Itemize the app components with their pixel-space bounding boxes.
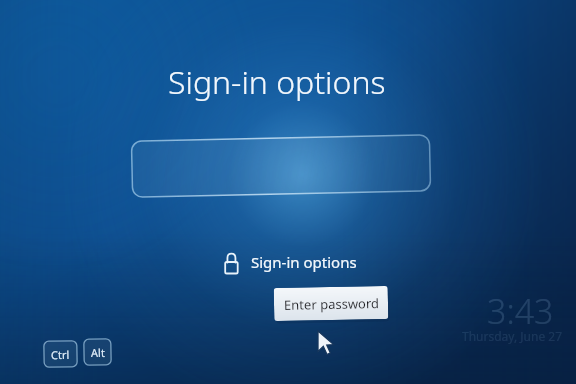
- staticText: Alt: [91, 345, 105, 360]
- staticText: 3:43: [487, 288, 554, 334]
- button[interactable]: Alt: [84, 339, 111, 365]
- staticText: Sign-in options: [168, 60, 386, 104]
- button[interactable]: Sign-in options: [220, 248, 368, 276]
- staticText: Enter password: [284, 294, 379, 314]
- staticText: Ctrl: [51, 347, 70, 362]
- button[interactable]: Ctrl: [44, 341, 77, 367]
- button[interactable]: Enter password: [274, 286, 388, 321]
- button[interactable]: Password: [131, 135, 431, 197]
- staticText: Thursday, June 27: [462, 328, 563, 344]
- staticText: Sign-in options: [251, 252, 357, 272]
